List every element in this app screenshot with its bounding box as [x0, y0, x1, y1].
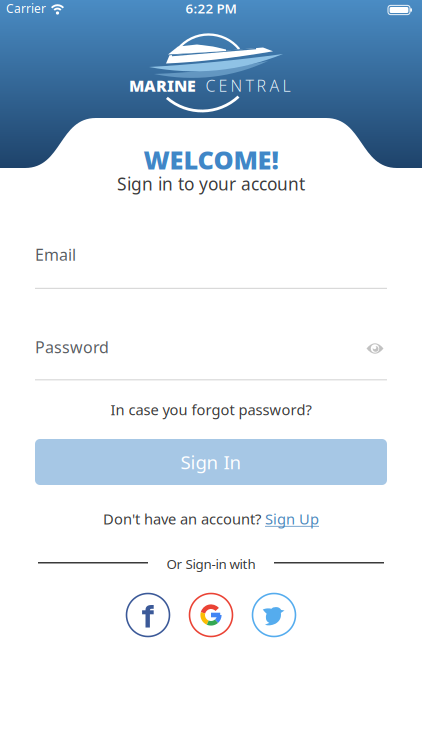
staticText: Sign in to your account — [117, 172, 305, 195]
button[interactable] — [252, 593, 295, 636]
button[interactable]: Sign Up — [265, 509, 319, 528]
staticText: CENTRAL — [205, 75, 290, 96]
staticText: Don't have an account? — [103, 509, 265, 528]
staticText: MARINE — [129, 75, 196, 96]
staticText: Email — [35, 244, 76, 265]
button[interactable]: Email — [35, 244, 387, 289]
button[interactable] — [126, 593, 169, 636]
button[interactable] — [189, 593, 232, 636]
staticText: In case you forgot password? — [110, 400, 311, 419]
button[interactable] — [361, 336, 389, 360]
staticText: 6:22 PM — [185, 0, 236, 17]
staticText: Sign In — [180, 450, 241, 474]
button[interactable]: Sign In — [35, 439, 387, 485]
staticText: Carrier — [6, 0, 46, 16]
staticText: Or Sign-in with — [166, 555, 255, 573]
staticText: WELCOME! — [143, 143, 278, 176]
staticText: Sign Up — [265, 509, 319, 528]
staticText: Password — [35, 336, 109, 358]
button[interactable]: In case you forgot password? — [110, 400, 311, 419]
button[interactable]: Password — [35, 336, 387, 380]
